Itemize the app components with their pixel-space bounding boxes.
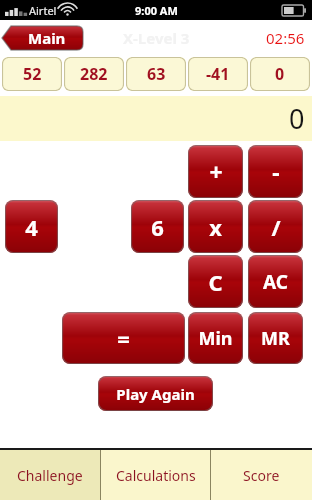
staticText: 52 <box>23 63 42 85</box>
button[interactable]: = <box>62 312 185 364</box>
button[interactable]: - <box>248 145 303 198</box>
button[interactable]: 63 <box>126 57 186 91</box>
button[interactable]: Calculations <box>101 450 210 500</box>
staticText: Min <box>198 326 233 351</box>
staticText: 02:56 <box>266 28 305 48</box>
staticText: 0 <box>275 63 285 85</box>
button[interactable]: / <box>248 200 303 253</box>
staticText: 0 <box>289 100 305 137</box>
staticText: 63 <box>147 63 166 85</box>
button[interactable]: Score <box>211 450 312 500</box>
staticText: MR <box>261 326 290 351</box>
staticText: 9:00 AM <box>135 3 178 18</box>
staticText: Score <box>243 466 280 485</box>
button[interactable]: 6 <box>131 200 184 253</box>
button[interactable]: + <box>188 145 243 198</box>
button[interactable]: MR <box>248 312 303 364</box>
staticText: C <box>208 267 223 297</box>
button[interactable]: AC <box>248 255 303 308</box>
button[interactable]: C <box>188 255 243 308</box>
button[interactable]: 4 <box>5 200 58 253</box>
staticText: x <box>209 212 222 242</box>
button[interactable]: 52 <box>2 57 62 91</box>
staticText: Challenge <box>17 466 83 485</box>
staticText: + <box>209 156 223 187</box>
staticText: - <box>272 156 280 187</box>
staticText: AC <box>263 269 288 295</box>
staticText: Main <box>28 28 66 48</box>
button[interactable]: 0 <box>250 57 310 91</box>
button[interactable]: x <box>188 200 243 253</box>
button[interactable]: 282 <box>64 57 124 91</box>
staticText: -41 <box>206 63 230 85</box>
button[interactable]: Main <box>2 25 83 51</box>
staticText: 282 <box>80 63 108 85</box>
staticText: Calculations <box>116 466 196 485</box>
button[interactable]: Min <box>188 312 243 364</box>
staticText: 6 <box>151 212 164 242</box>
staticText: Play Again <box>116 384 195 404</box>
staticText: X-Level 3 <box>123 28 190 48</box>
button[interactable]: -41 <box>188 57 248 91</box>
staticText: 4 <box>25 212 38 242</box>
button[interactable]: Challenge <box>0 450 100 500</box>
staticText: Airtel <box>29 3 57 18</box>
button[interactable]: Play Again <box>98 376 213 411</box>
staticText: / <box>271 212 281 242</box>
staticText: = <box>117 323 130 353</box>
